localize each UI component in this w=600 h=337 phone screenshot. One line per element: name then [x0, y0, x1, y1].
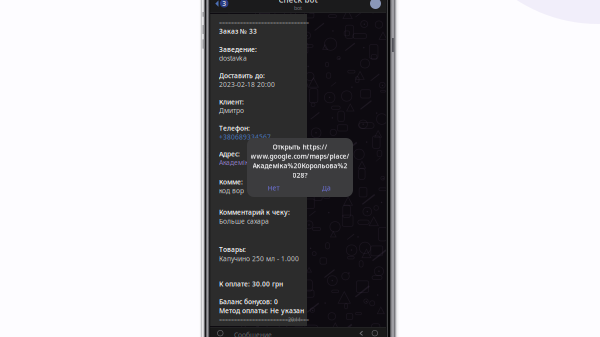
- staticText: Check bot: [278, 0, 317, 5]
- button[interactable]: Chat profile: [210, 0, 221, 11]
- button[interactable]: Emoji: [210, 327, 216, 333]
- staticText: Баланс бонусов: 0: [219, 297, 278, 306]
- staticText: Адрес:: [219, 149, 240, 158]
- staticText: bot: [294, 4, 302, 11]
- staticText: +380689334567: [219, 132, 271, 141]
- staticText: Заведение:: [219, 45, 257, 54]
- staticText: Телефон:: [219, 124, 250, 133]
- button[interactable]: Нет: [247, 181, 300, 195]
- staticText: ==============================: [219, 316, 309, 323]
- staticText: Да: [322, 184, 331, 192]
- staticText: ==============================: [219, 19, 309, 26]
- staticText: 3: [222, 0, 226, 8]
- staticText: dostavka: [219, 54, 247, 63]
- staticText: Дмитро: [219, 106, 244, 115]
- staticText: 20:11: [288, 316, 301, 323]
- button[interactable]: Attach file: [210, 327, 216, 333]
- staticText: 028?: [292, 171, 307, 180]
- staticText: код вор: [219, 186, 244, 195]
- staticText: Метод оплаты: Не указан: [219, 306, 304, 315]
- staticText: www.google.com/maps/place/: [250, 152, 349, 161]
- staticText: Товары:: [219, 245, 246, 254]
- button[interactable]: Да: [300, 181, 353, 195]
- staticText: Сообщение: [234, 330, 272, 337]
- staticText: Открыть https://: [272, 142, 327, 151]
- staticText: Нет: [267, 184, 279, 192]
- staticText: Комме:: [219, 177, 243, 186]
- staticText: Академіка%20Корольова%2: [252, 161, 347, 170]
- staticText: Доставить до:: [219, 71, 265, 80]
- button[interactable]: Voice message: [210, 327, 216, 333]
- staticText: Заказ № 33: [219, 27, 257, 36]
- staticText: Академіка: [219, 158, 252, 167]
- staticText: 2023-02-18 20:00: [219, 80, 275, 89]
- staticText: Клиент:: [219, 97, 244, 106]
- staticText: Комментарий к чеку:: [219, 208, 290, 217]
- staticText: К оплате: 30.00 грн: [219, 279, 283, 288]
- button[interactable]: Back, 3 unread: [210, 0, 234, 13]
- staticText: Больше сахара: [219, 217, 269, 226]
- staticText: Капучино 250 мл - 1.000: [219, 254, 299, 263]
